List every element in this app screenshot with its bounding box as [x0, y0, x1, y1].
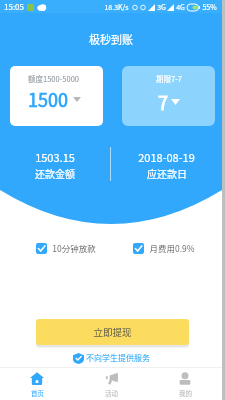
staticText: 期限7-7: [156, 73, 182, 84]
staticText: 10分钟放款: [52, 242, 96, 254]
button[interactable]: Home: [0, 368, 74, 400]
staticText: 1503.15: [35, 149, 75, 165]
staticText: 活动: [105, 388, 118, 397]
button[interactable]: 10分钟放款: [36, 241, 96, 255]
staticText: 额度1500-5000: [28, 73, 79, 84]
staticText: 我的: [179, 388, 192, 397]
staticText: 首页: [31, 388, 44, 397]
staticText: 7: [158, 89, 168, 115]
staticText: 月费用0.9%: [149, 242, 195, 254]
button[interactable]: 期限7-7: [122, 66, 215, 126]
staticText: 18.3K/s: [104, 2, 129, 12]
button[interactable]: 月费用0.9%: [133, 241, 195, 255]
staticText: 立即提现: [93, 325, 132, 339]
button[interactable]: 立即提现: [36, 319, 189, 345]
button[interactable]: 额度1500-5000: [10, 66, 103, 126]
staticText: 3G: [157, 2, 166, 12]
staticText: 55%: [202, 2, 217, 12]
staticText: 极秒到账: [89, 31, 133, 47]
button[interactable]: Activity: [74, 368, 148, 400]
staticText: 15:05: [4, 1, 24, 13]
staticText: 1500: [28, 86, 68, 112]
staticText: 不向学生提供服务: [86, 352, 150, 364]
button[interactable]: Profile: [148, 368, 222, 400]
staticText: 4G: [176, 2, 185, 12]
staticText: 还款金额: [35, 166, 75, 180]
staticText: 2018-08-19: [138, 149, 195, 165]
staticText: 应还款日: [147, 166, 187, 180]
